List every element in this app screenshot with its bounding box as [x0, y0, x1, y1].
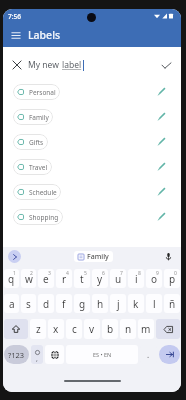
staticText: 7: [120, 270, 123, 277]
staticText: t: [80, 272, 84, 286]
button[interactable]: ñ: [164, 294, 180, 313]
staticText: Gifts: [29, 138, 44, 147]
staticText: b: [107, 322, 114, 336]
staticText: z: [36, 322, 41, 336]
button[interactable]: Shift: [4, 319, 28, 339]
staticText: Family: [29, 113, 49, 122]
staticText: 9: [156, 270, 159, 277]
button[interactable]: f: [56, 294, 72, 313]
staticText: v: [89, 322, 95, 336]
button[interactable]: Cancel: [9, 57, 25, 73]
button[interactable]: x: [48, 319, 64, 339]
staticText: y: [97, 272, 103, 286]
staticText: ,: [36, 354, 38, 364]
staticText: Schedule: [29, 188, 57, 197]
button[interactable]: .: [140, 345, 157, 364]
staticText: n: [125, 322, 132, 336]
staticText: q: [8, 272, 15, 286]
staticText: a: [9, 297, 15, 311]
button[interactable]: h: [92, 294, 108, 313]
button[interactable]: Edit Schedule: [155, 185, 168, 198]
button[interactable]: Gifts: [13, 134, 48, 150]
button[interactable]: ?123: [4, 345, 29, 364]
staticText: i: [135, 272, 138, 286]
staticText: m: [141, 322, 151, 336]
button[interactable]: u: [110, 269, 126, 288]
button[interactable]: Schedule: [13, 184, 61, 200]
staticText: f: [62, 297, 66, 311]
button[interactable]: Enter: [159, 345, 180, 364]
button[interactable]: g: [74, 294, 90, 313]
button[interactable]: Change language: [45, 345, 64, 364]
staticText: c: [72, 322, 77, 336]
button[interactable]: p: [164, 269, 180, 288]
button[interactable]: m: [138, 319, 154, 339]
button[interactable]: Open navigation menu: [8, 27, 24, 43]
button[interactable]: Edit Family: [155, 110, 168, 123]
staticText: Labels: [28, 28, 61, 42]
staticText: g: [79, 297, 86, 311]
button[interactable]: Travel: [13, 159, 52, 175]
button[interactable]: w: [21, 269, 36, 288]
button[interactable]: s: [21, 294, 36, 313]
staticText: h: [97, 297, 104, 311]
button[interactable]: d: [38, 294, 54, 313]
button[interactable]: l: [146, 294, 162, 313]
button[interactable]: v: [84, 319, 100, 339]
button[interactable]: Family: [13, 109, 53, 125]
staticText: 5: [84, 270, 87, 277]
staticText: ñ: [169, 297, 176, 311]
staticText: 0: [174, 270, 177, 277]
button[interactable]: Edit Personal: [155, 85, 168, 98]
button[interactable]: k: [128, 294, 144, 313]
staticText: o: [151, 272, 158, 286]
button[interactable]: q: [4, 269, 19, 288]
staticText: j: [117, 297, 120, 311]
button[interactable]: z: [30, 319, 46, 339]
button[interactable]: a: [4, 294, 19, 313]
staticText: Travel: [29, 163, 48, 172]
staticText: Personal: [29, 88, 56, 97]
button[interactable]: Shopping: [13, 209, 63, 225]
staticText: 8: [138, 270, 141, 277]
staticText: r: [62, 272, 67, 286]
staticText: 2: [30, 270, 33, 277]
staticText: s: [26, 297, 31, 311]
staticText: 3: [48, 270, 51, 277]
button[interactable]: Edit Shopping: [155, 210, 168, 223]
button[interactable]: Edit Travel: [155, 160, 168, 173]
button[interactable]: Personal: [13, 84, 60, 100]
button[interactable]: Voice input: [162, 251, 174, 263]
button[interactable]: Emoji and comma: [31, 345, 43, 364]
button[interactable]: r: [56, 269, 72, 288]
staticText: x: [53, 322, 59, 336]
button[interactable]: i: [128, 269, 144, 288]
button[interactable]: o: [146, 269, 162, 288]
staticText: w: [25, 272, 33, 286]
staticText: ES • EN: [93, 351, 112, 358]
staticText: Family: [87, 252, 109, 262]
button[interactable]: Backspace: [156, 319, 180, 339]
staticText: u: [115, 272, 122, 286]
button[interactable]: Edit Gifts: [155, 135, 168, 148]
button[interactable]: Save label: [158, 57, 174, 73]
button[interactable]: Family: [74, 251, 113, 262]
button[interactable]: t: [74, 269, 90, 288]
staticText: .: [147, 349, 150, 360]
button[interactable]: y: [92, 269, 108, 288]
button[interactable]: ES • EN: [66, 345, 138, 364]
button[interactable]: c: [66, 319, 82, 339]
staticText: 6: [102, 270, 105, 277]
button[interactable]: b: [102, 319, 118, 339]
staticText: k: [133, 297, 139, 311]
staticText: l: [153, 297, 156, 311]
staticText: d: [43, 297, 50, 311]
button[interactable]: e: [38, 269, 54, 288]
staticText: 4: [66, 270, 69, 277]
staticText: e: [43, 272, 49, 286]
staticText: ?123: [8, 350, 25, 360]
button[interactable]: n: [120, 319, 136, 339]
button[interactable]: j: [110, 294, 126, 313]
staticText: 1: [13, 270, 16, 277]
button[interactable]: Expand suggestions: [8, 250, 21, 263]
